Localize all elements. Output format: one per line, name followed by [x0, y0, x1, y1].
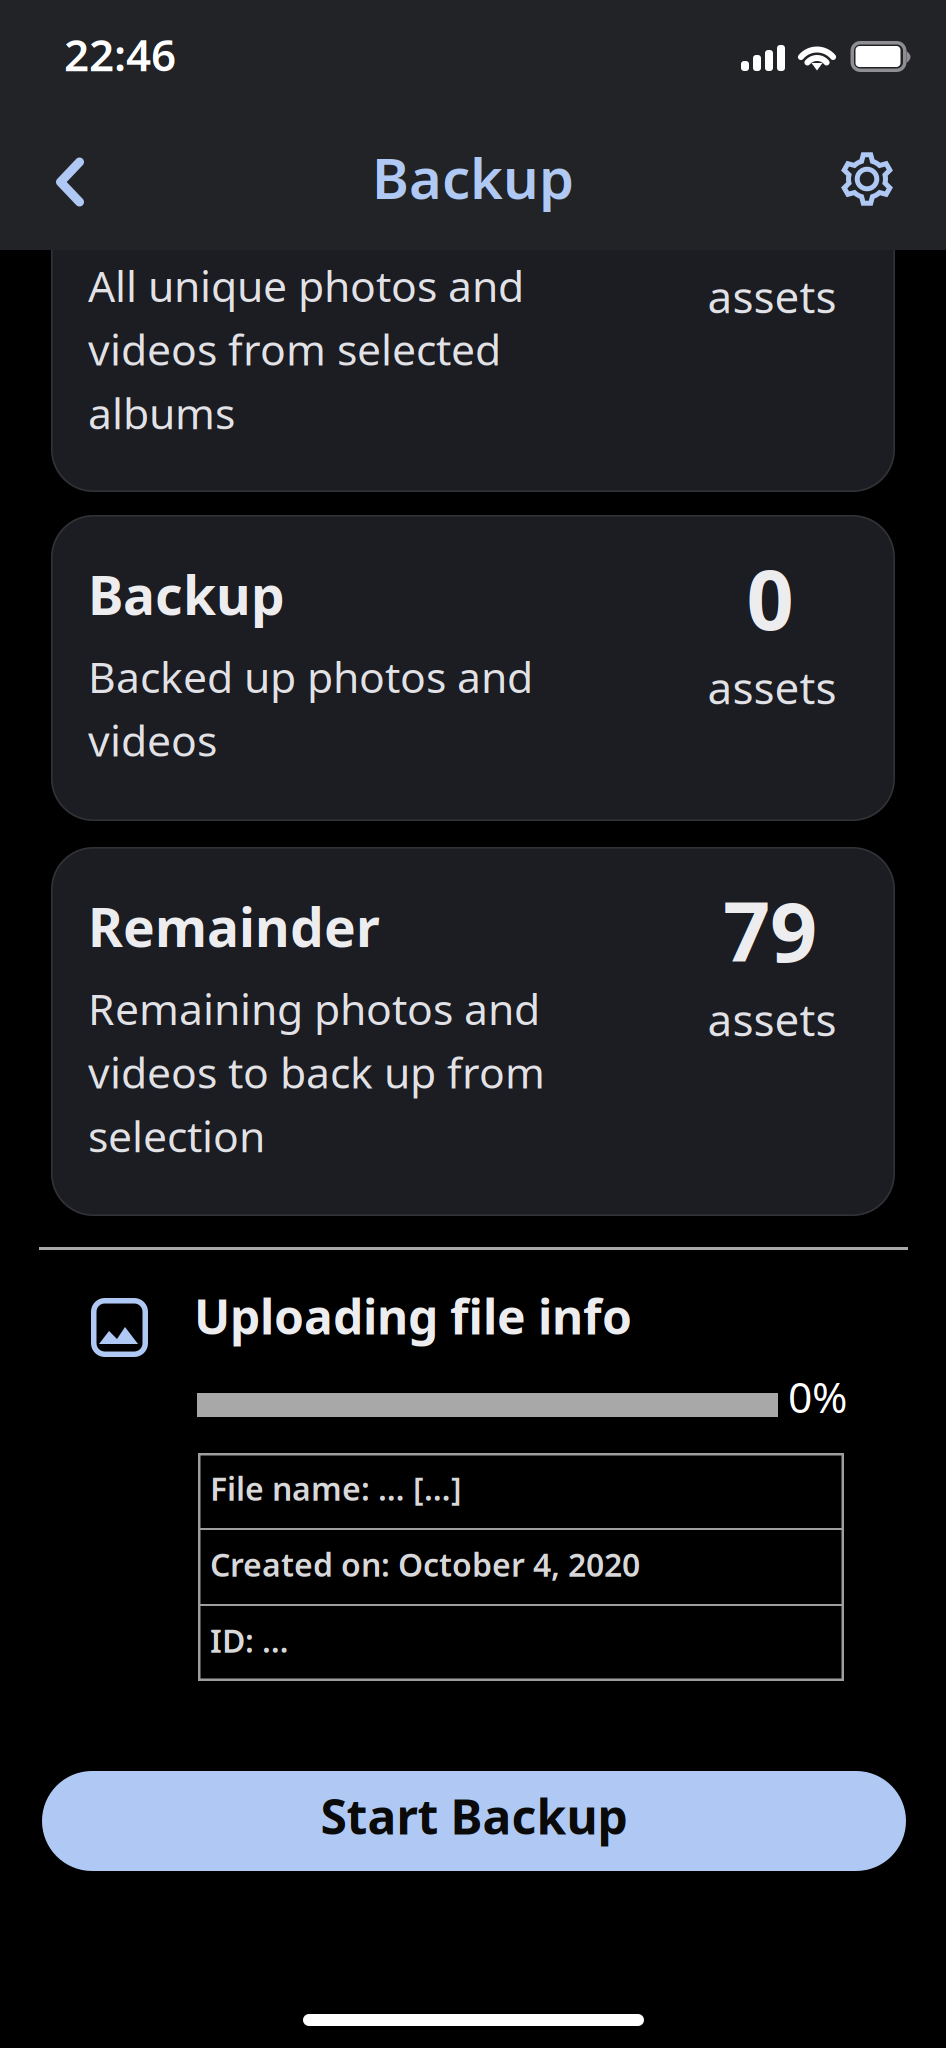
- staticText: All unique photos and videos from select…: [88, 257, 524, 441]
- staticText: Backup: [88, 559, 285, 630]
- staticText: 79: [723, 875, 817, 985]
- staticText: 22:46: [64, 25, 176, 83]
- staticText: Backed up photos and videos: [88, 648, 533, 768]
- staticText: Backup: [372, 140, 574, 214]
- staticText: Start Backup: [320, 1784, 627, 1848]
- staticText: 0%: [788, 1368, 847, 1425]
- button[interactable]: Settings: [812, 124, 922, 234]
- staticText: Remainder: [88, 891, 380, 962]
- button[interactable]: Start Backup: [42, 1771, 906, 1871]
- staticText: Uploading file info: [194, 1284, 632, 1348]
- staticText: 0: [746, 543, 793, 653]
- staticText: ID: …: [210, 1619, 289, 1661]
- staticText: assets: [707, 267, 836, 325]
- staticText: Remaining photos and videos to back up f…: [88, 980, 545, 1164]
- staticText: File name: … […]: [210, 1467, 462, 1509]
- staticText: Created on: October 4, 2020: [210, 1543, 640, 1585]
- staticText: assets: [707, 990, 836, 1048]
- button[interactable]: Back: [15, 127, 125, 237]
- staticText: assets: [707, 658, 836, 716]
